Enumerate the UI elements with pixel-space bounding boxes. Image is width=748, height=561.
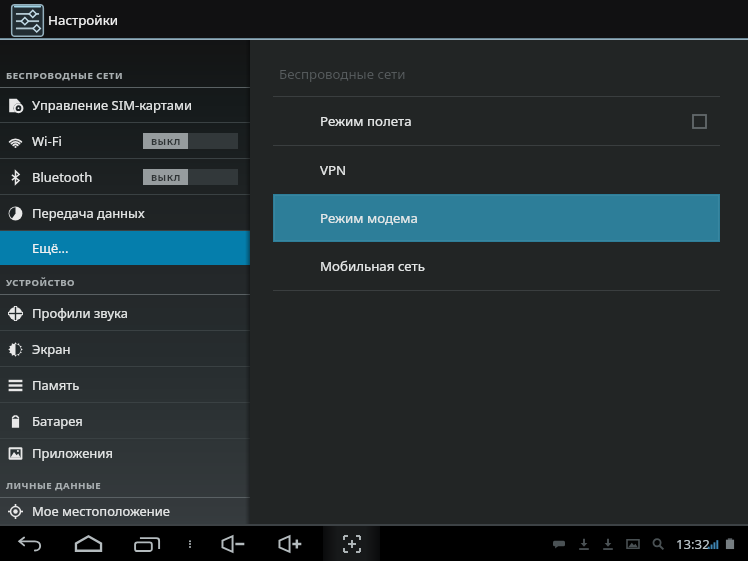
staticText: Мое местоположение	[32, 502, 170, 520]
button[interactable]: Toggle off	[143, 133, 238, 149]
staticText: Профили звука	[32, 304, 128, 322]
other: Settings	[11, 4, 44, 37]
staticText: Приложения	[32, 444, 113, 462]
button[interactable]: Menu	[168, 526, 212, 561]
staticText: Мобильная сеть	[320, 257, 425, 275]
button[interactable]: Toggle off	[143, 169, 238, 185]
button[interactable]: Экран	[0, 331, 250, 367]
button[interactable]: Bluetooth	[0, 159, 250, 195]
button[interactable]: VPN	[273, 146, 720, 194]
staticText: Беспроводные сети	[279, 65, 406, 83]
staticText: Режим полета	[320, 112, 412, 130]
button[interactable]: Airplane mode checkbox	[693, 115, 706, 128]
button[interactable]: Управление SIM-картами	[0, 88, 250, 123]
button[interactable]: Back	[7, 526, 51, 561]
staticText: Память	[32, 376, 80, 394]
button[interactable]: Батарея	[0, 403, 250, 439]
staticText: Bluetooth	[32, 168, 93, 186]
staticText: УСТРОЙСТВО	[6, 276, 76, 289]
button[interactable]: Volume down	[210, 526, 254, 561]
staticText: Передача данных	[32, 204, 145, 222]
staticText: Настройки	[48, 11, 119, 29]
button[interactable]: Home	[66, 526, 110, 561]
button[interactable]: Screenshot	[323, 526, 380, 561]
button[interactable]: Recent apps	[125, 526, 169, 561]
button[interactable]: Мобильная сеть	[273, 242, 720, 290]
staticText: ВЫКЛ	[151, 171, 181, 184]
staticText: ВЫКЛ	[151, 135, 181, 148]
button[interactable]: Wi-Fi	[0, 123, 250, 159]
staticText: Режим модема	[320, 209, 418, 227]
staticText: Батарея	[32, 412, 83, 430]
staticText: 13:32	[676, 535, 710, 553]
staticText: Экран	[32, 340, 71, 358]
staticText: VPN	[320, 161, 347, 179]
staticText: Ещё...	[32, 239, 69, 257]
button[interactable]: Память	[0, 367, 250, 403]
button[interactable]: Ещё...	[0, 231, 250, 265]
staticText: БЕСПРОВОДНЫЕ СЕТИ	[6, 69, 123, 82]
button[interactable]: Режим модема	[273, 194, 720, 242]
button[interactable]: Передача данных	[0, 195, 250, 231]
button[interactable]: Профили звука	[0, 295, 250, 331]
button[interactable]: Режим полета	[273, 97, 720, 145]
button[interactable]: Volume up	[267, 526, 311, 561]
button[interactable]: Мое местоположение	[0, 498, 250, 524]
staticText: Управление SIM-картами	[32, 96, 193, 114]
staticText: ЛИЧНЫЕ ДАННЫЕ	[6, 479, 102, 492]
staticText: Wi-Fi	[32, 132, 62, 150]
button[interactable]: Приложения	[0, 439, 250, 467]
